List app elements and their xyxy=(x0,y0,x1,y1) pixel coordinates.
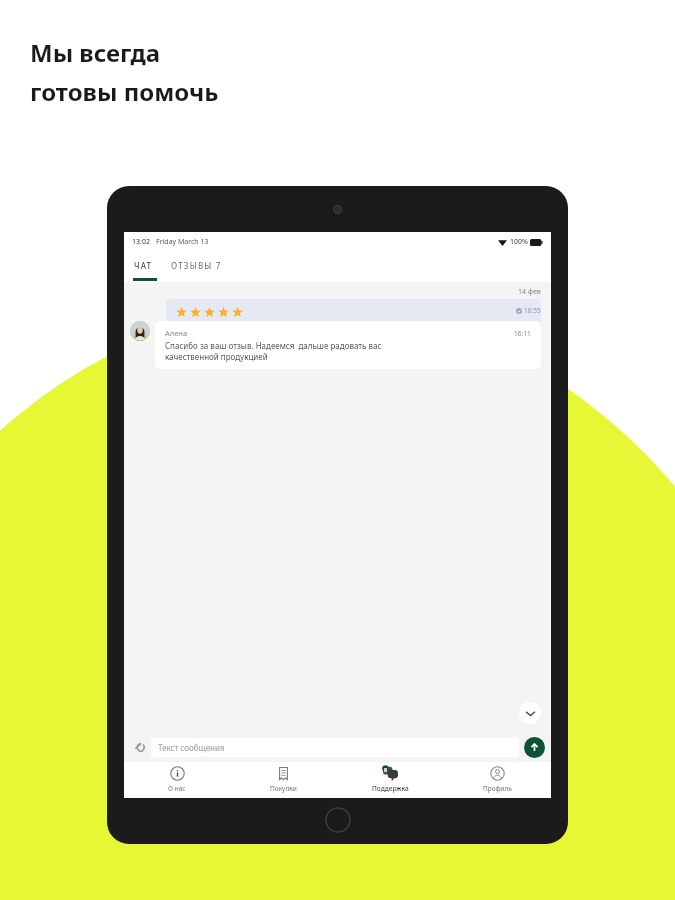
staticText: Мы всегда xyxy=(30,36,161,69)
button[interactable]: Attach file xyxy=(130,738,148,756)
button[interactable]: Send xyxy=(524,737,545,758)
staticText: Спасибо за ваш отзыв. Надеемся дальше ра… xyxy=(165,340,382,351)
staticText: 8 xyxy=(384,766,388,773)
staticText: качественной продукцией xyxy=(165,351,268,362)
button[interactable]: Очень довольна,что нашла здесь все, что … xyxy=(166,299,541,352)
staticText: готовы помочь xyxy=(30,75,219,108)
staticText: ЧАТ xyxy=(134,260,153,271)
staticText: 13:02 xyxy=(132,237,150,247)
button[interactable]: Покупки xyxy=(230,762,337,798)
button[interactable]: Алена xyxy=(155,321,541,369)
staticText: ОТЗЫВЫ 7 xyxy=(171,260,222,271)
staticText: Алена xyxy=(165,328,188,338)
button[interactable]: 8 xyxy=(337,762,444,798)
button[interactable]: Home xyxy=(325,807,351,833)
staticText: Поддержка xyxy=(372,784,409,793)
staticText: 14 фев xyxy=(518,287,541,297)
staticText: Текст сообщения xyxy=(158,742,225,753)
button[interactable]: Профиль xyxy=(444,762,551,798)
button[interactable]: ОТЗЫВЫ 7 xyxy=(169,257,224,274)
staticText: 16:11 xyxy=(514,329,531,338)
staticText: 16:55 xyxy=(524,306,541,315)
staticText: Очень довольна,что нашла здесь все, что … xyxy=(176,322,407,333)
button[interactable]: О нас xyxy=(124,762,230,798)
staticText: Friday March 13 xyxy=(156,237,209,247)
button[interactable]: ЧАТ xyxy=(132,257,155,274)
staticText: 100% xyxy=(510,237,528,247)
staticText: Профиль xyxy=(483,784,512,793)
button[interactable]: Текст сообщения xyxy=(151,738,519,757)
staticText: Покупки xyxy=(270,784,297,793)
button[interactable]: Scroll to bottom xyxy=(519,702,541,724)
staticText: О нас xyxy=(168,784,186,793)
staticText: Все свежее качественное xyxy=(176,333,277,344)
